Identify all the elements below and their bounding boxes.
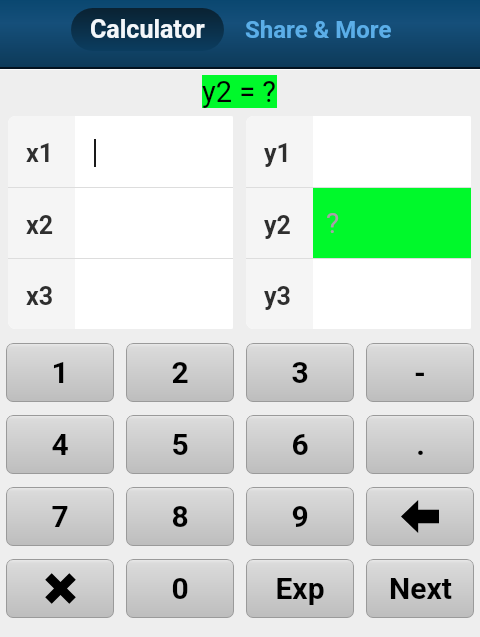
staticText: y2 = ? bbox=[202, 75, 277, 108]
staticText: Share & More bbox=[245, 16, 392, 44]
staticText: x2 bbox=[26, 211, 54, 240]
button[interactable]: 5 bbox=[126, 415, 234, 474]
button[interactable]: Backspace bbox=[366, 487, 474, 546]
staticText: 4 bbox=[51, 427, 69, 462]
staticText: Exp bbox=[275, 571, 325, 606]
button[interactable]: - bbox=[366, 343, 474, 402]
button[interactable]: . bbox=[366, 415, 474, 474]
button[interactable]: 8 bbox=[126, 487, 234, 546]
button[interactable]: y3 bbox=[246, 259, 471, 329]
staticText: y3 bbox=[264, 282, 291, 311]
staticText: y1 bbox=[264, 139, 291, 168]
button[interactable]: Clear bbox=[6, 559, 114, 618]
button[interactable]: x2 bbox=[8, 188, 233, 258]
staticText: 3 bbox=[291, 355, 309, 390]
staticText: ? bbox=[326, 207, 340, 240]
staticText: 8 bbox=[171, 499, 189, 534]
staticText: Next bbox=[389, 571, 452, 606]
button[interactable]: Exp bbox=[246, 559, 354, 618]
staticText: Calculator bbox=[90, 15, 205, 44]
staticText: 5 bbox=[171, 427, 189, 462]
button[interactable]: Share & More bbox=[234, 8, 402, 51]
button[interactable]: 6 bbox=[246, 415, 354, 474]
staticText: 9 bbox=[291, 499, 309, 534]
staticText: 7 bbox=[51, 499, 69, 534]
button[interactable]: x1 bbox=[8, 116, 233, 187]
staticText: - bbox=[414, 355, 426, 390]
button[interactable]: Next bbox=[366, 559, 474, 618]
button[interactable]: 7 bbox=[6, 487, 114, 546]
button[interactable]: 9 bbox=[246, 487, 354, 546]
button[interactable]: 1 bbox=[6, 343, 114, 402]
staticText: y2 bbox=[264, 211, 291, 240]
button[interactable]: y1 bbox=[246, 116, 471, 187]
button[interactable]: 4 bbox=[6, 415, 114, 474]
button[interactable]: x3 bbox=[8, 259, 233, 329]
staticText: 6 bbox=[291, 427, 309, 462]
staticText: 2 bbox=[171, 355, 189, 390]
staticText: x1 bbox=[26, 139, 54, 168]
staticText: x3 bbox=[26, 282, 54, 311]
button[interactable]: 2 bbox=[126, 343, 234, 402]
staticText: 0 bbox=[171, 571, 189, 606]
button[interactable]: 0 bbox=[126, 559, 234, 618]
staticText: 1 bbox=[51, 355, 69, 390]
staticText: . bbox=[416, 427, 425, 462]
button[interactable]: Calculator bbox=[71, 8, 224, 51]
button[interactable]: y2 bbox=[246, 188, 471, 258]
button[interactable]: 3 bbox=[246, 343, 354, 402]
